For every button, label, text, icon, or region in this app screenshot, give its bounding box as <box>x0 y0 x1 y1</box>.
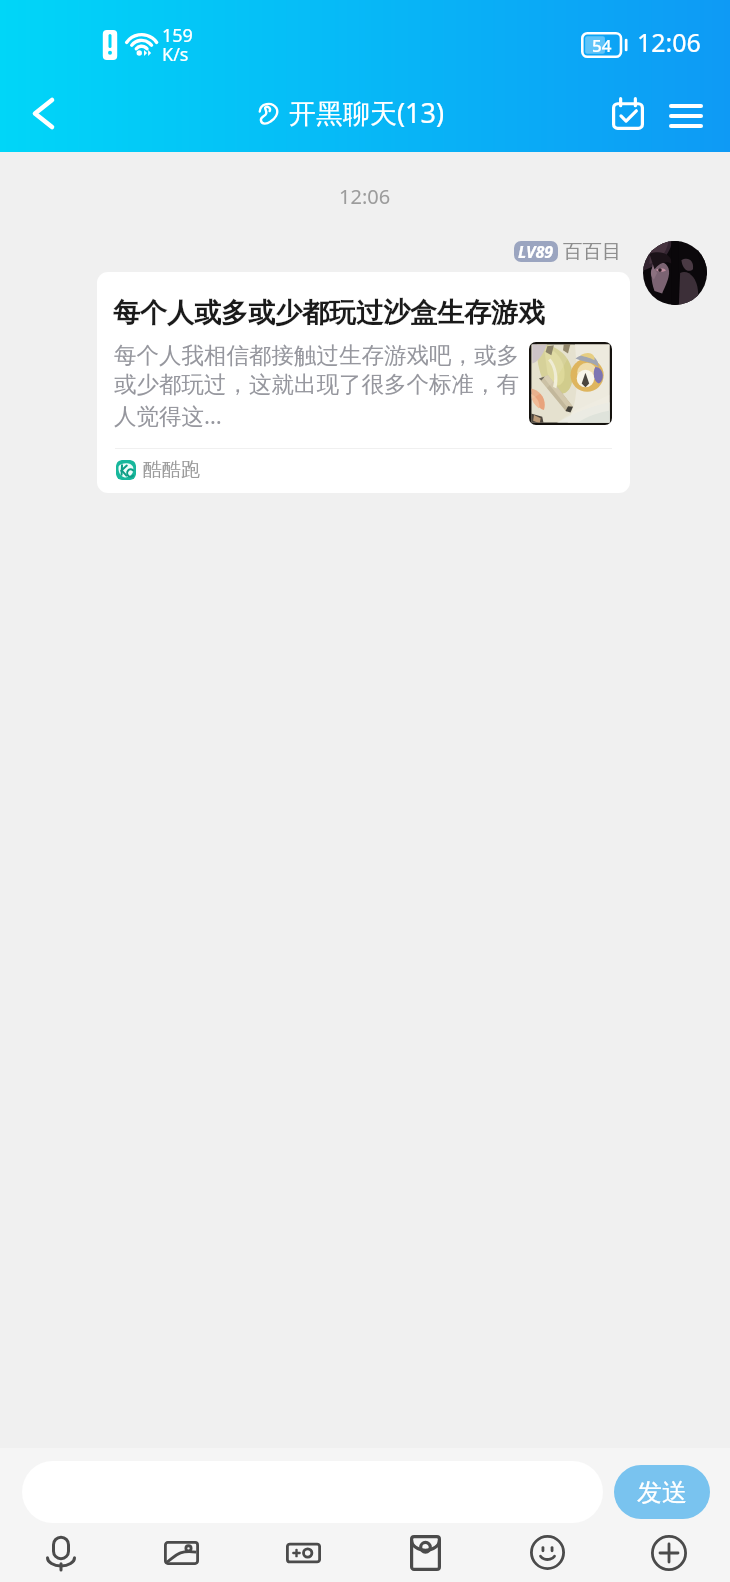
staticText: LV89 <box>518 241 554 262</box>
button[interactable]: Red packet <box>364 1523 486 1582</box>
button[interactable]: 每个人或多或少都玩过沙盒生存游戏 <box>97 272 630 493</box>
staticText: 开黑聊天(13) <box>289 94 445 131</box>
staticText: 每个人我相信都接触过生存游戏吧，或多或少都玩过，这就出现了很多个标准，有人觉得这… <box>114 341 520 430</box>
button[interactable]: Menu <box>657 87 715 145</box>
button[interactable]: Sign in calendar <box>599 85 657 143</box>
staticText: 12:06 <box>637 25 701 59</box>
staticText: 百百目 <box>563 239 622 264</box>
button[interactable]: More <box>608 1523 730 1582</box>
staticText: 酷酷跑 <box>143 458 200 482</box>
button[interactable]: Voice message <box>0 1523 121 1582</box>
button[interactable]: 发送 <box>614 1465 710 1519</box>
staticText: 12:06 <box>339 183 391 210</box>
staticText: 54 <box>592 34 612 57</box>
staticText: 发送 <box>637 1477 687 1508</box>
button[interactable]: Back <box>8 84 79 142</box>
button[interactable]: Avatar <box>643 241 707 305</box>
button[interactable]: Sticker <box>242 1523 364 1582</box>
button[interactable]: Emoji <box>486 1523 608 1582</box>
staticText: 每个人或多或少都玩过沙盒生存游戏 <box>113 296 545 330</box>
staticText: 159 K/s <box>162 23 193 66</box>
button[interactable]: Photo <box>121 1523 242 1582</box>
